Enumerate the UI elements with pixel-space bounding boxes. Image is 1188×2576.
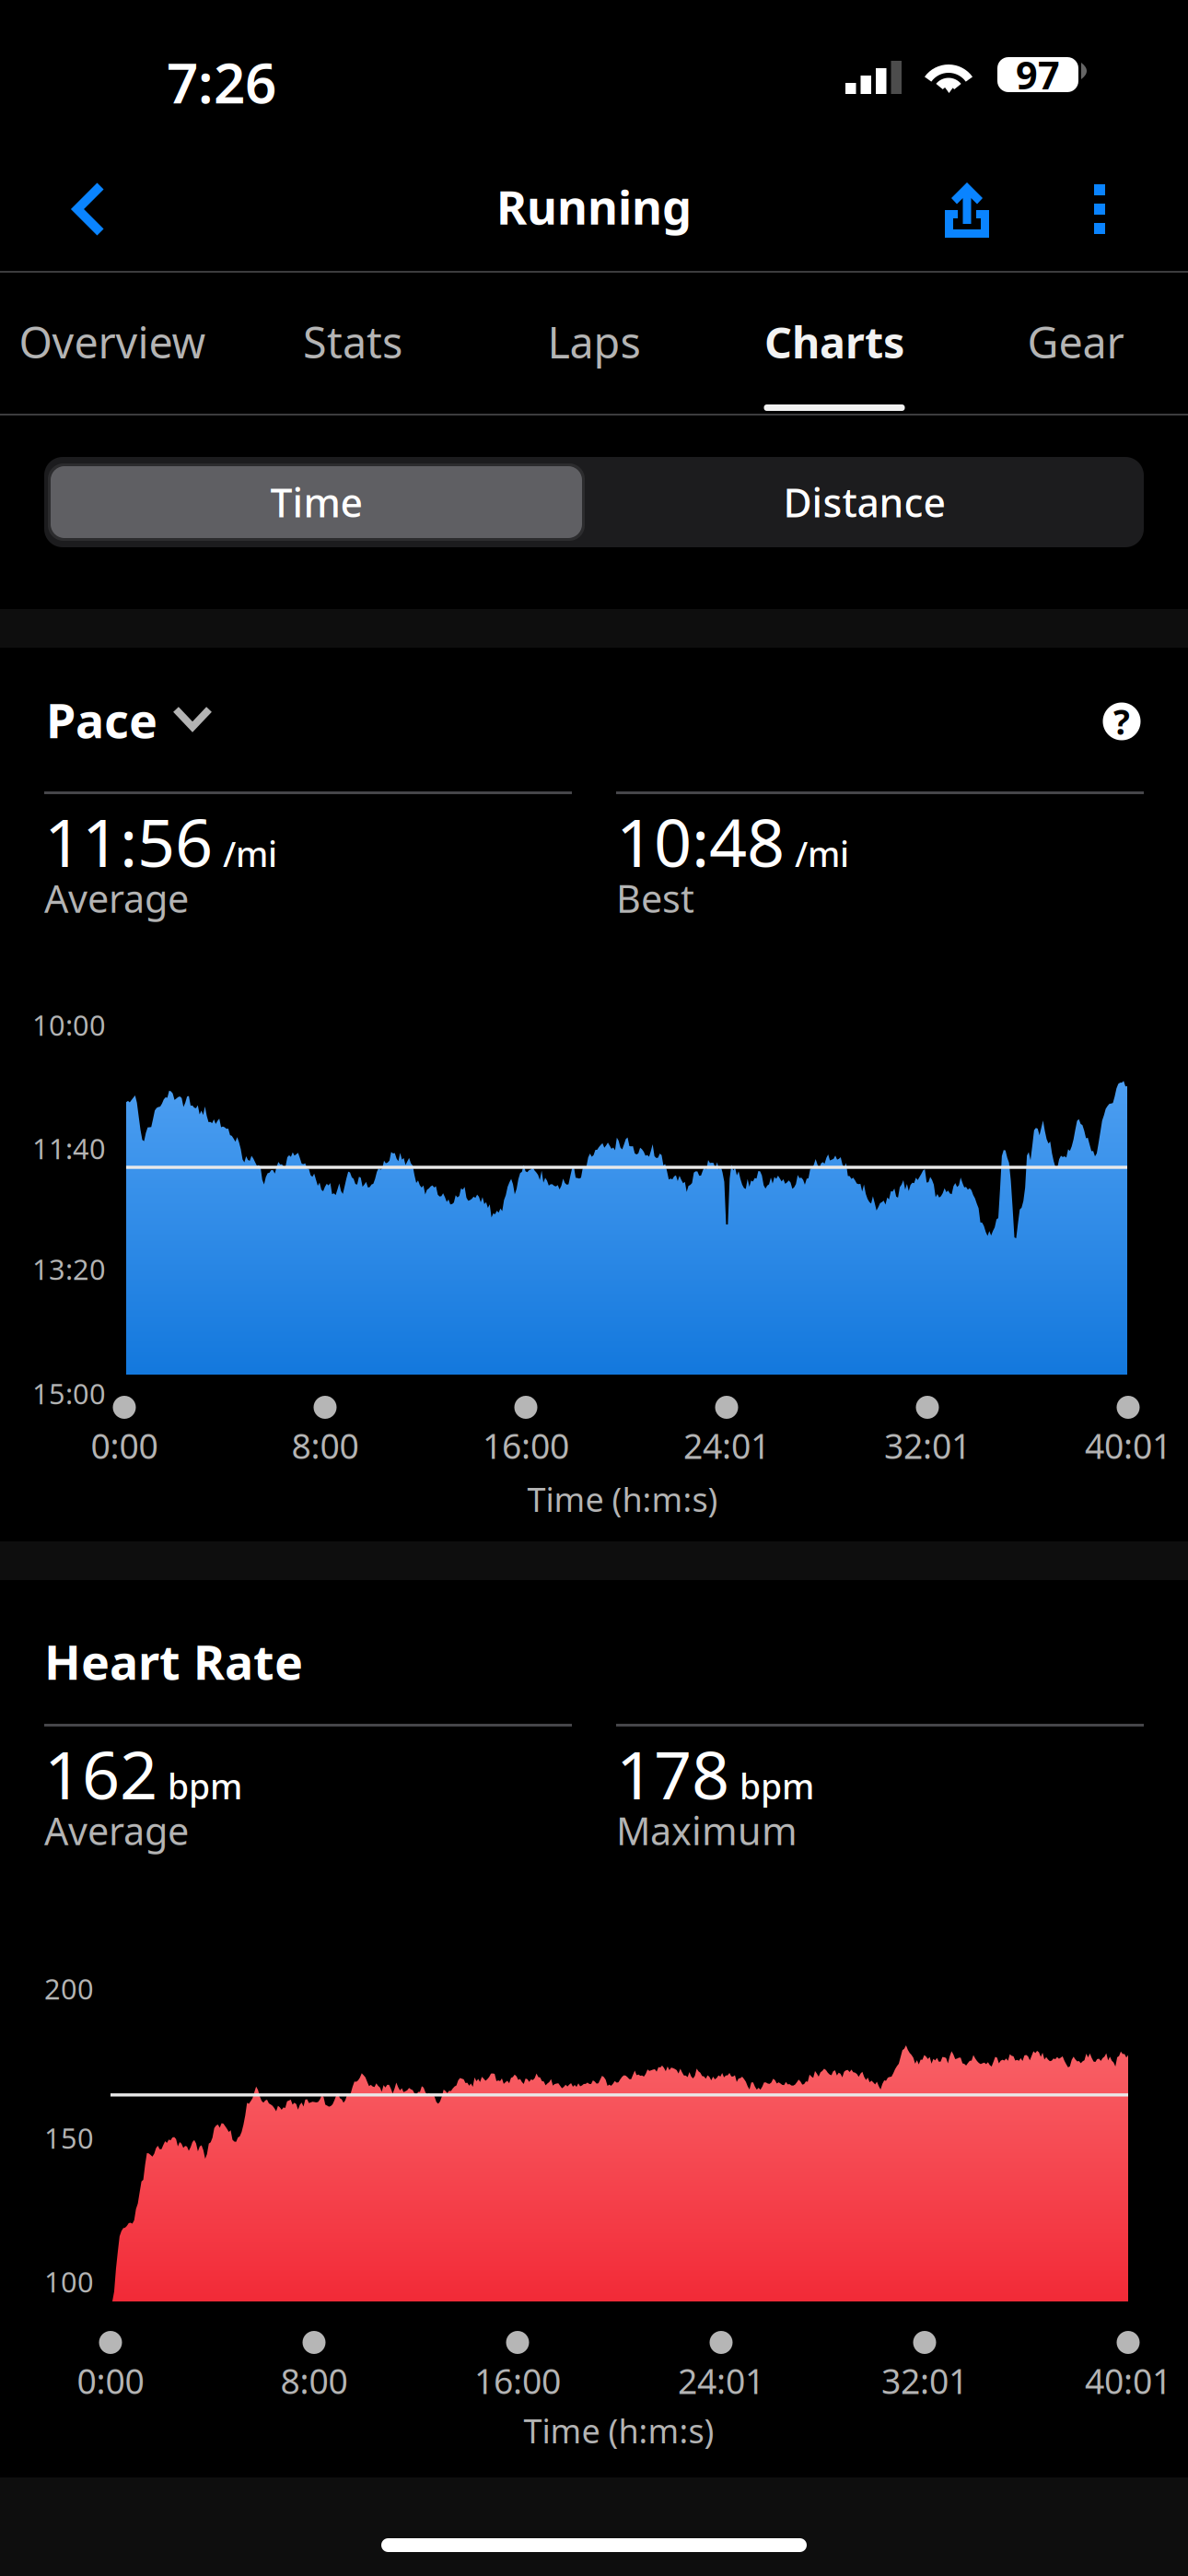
- staticText: 10:48: [616, 797, 785, 885]
- staticText: 10:00: [32, 1006, 106, 1044]
- staticText: Average: [44, 1805, 189, 1856]
- button[interactable]: Share: [921, 161, 1013, 257]
- staticText: Time: [270, 476, 362, 528]
- button[interactable]: Distance: [585, 463, 1144, 541]
- staticText: 40:01: [1085, 1423, 1171, 1468]
- staticText: ?: [1113, 699, 1130, 744]
- staticText: Heart Rate: [44, 1629, 303, 1693]
- staticText: Running: [496, 175, 692, 237]
- staticText: 7:26: [167, 45, 276, 119]
- staticText: /mi: [795, 831, 849, 876]
- button[interactable]: Laps: [474, 273, 714, 414]
- staticText: Time (h:m:s): [524, 2408, 714, 2452]
- staticText: Best: [616, 873, 694, 923]
- staticText: 15:00: [32, 1375, 106, 1412]
- staticText: 32:01: [884, 1423, 971, 1468]
- staticText: 150: [44, 2119, 94, 2157]
- staticText: 16:00: [483, 1423, 569, 1468]
- staticText: 24:01: [683, 1423, 770, 1468]
- staticText: Pace: [46, 688, 157, 751]
- button[interactable]: Help: [1089, 688, 1155, 755]
- staticText: 162: [44, 1729, 157, 1818]
- staticText: bpm: [168, 1763, 242, 1809]
- staticText: 100: [44, 2263, 94, 2300]
- staticText: /mi: [223, 831, 277, 876]
- staticText: 8:00: [291, 1423, 359, 1468]
- button[interactable]: Charts: [715, 273, 954, 414]
- button[interactable]: Time: [48, 463, 585, 541]
- staticText: bpm: [740, 1763, 814, 1809]
- staticText: Time (h:m:s): [527, 1477, 718, 1521]
- button[interactable]: Overview: [0, 273, 232, 414]
- button[interactable]: Gear: [956, 273, 1188, 414]
- staticText: Stats: [303, 313, 402, 370]
- staticText: 0:00: [91, 1423, 158, 1468]
- staticText: 24:01: [678, 2358, 764, 2404]
- staticText: 13:20: [32, 1250, 106, 1288]
- staticText: 40:01: [1085, 2358, 1171, 2404]
- staticText: Charts: [764, 313, 904, 370]
- staticText: 8:00: [280, 2358, 348, 2404]
- staticText: 178: [616, 1729, 729, 1818]
- button[interactable]: More options: [1056, 161, 1143, 257]
- button[interactable]: Back: [48, 161, 155, 257]
- staticText: Maximum: [616, 1805, 798, 1856]
- staticText: Distance: [783, 476, 945, 528]
- staticText: 0:00: [77, 2358, 144, 2404]
- staticText: 32:01: [881, 2358, 968, 2404]
- staticText: 97: [1016, 49, 1060, 100]
- staticText: 16:00: [474, 2358, 561, 2404]
- staticText: 11:40: [32, 1130, 106, 1167]
- button[interactable]: Pace: [46, 692, 285, 756]
- staticText: Laps: [547, 313, 641, 370]
- button[interactable]: Stats: [233, 273, 472, 414]
- staticText: Gear: [1027, 313, 1124, 370]
- staticText: Average: [44, 873, 189, 923]
- staticText: 200: [44, 1970, 94, 2007]
- staticText: 11:56: [44, 797, 213, 885]
- staticText: Overview: [19, 313, 206, 370]
